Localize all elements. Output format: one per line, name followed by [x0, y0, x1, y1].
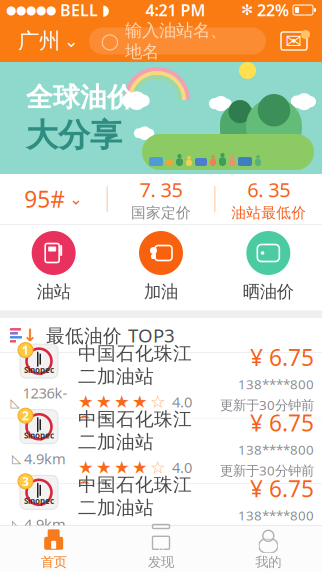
staticText: 4.0 — [168, 458, 192, 477]
staticText: 国家定价 — [131, 204, 191, 222]
button[interactable]: 晒油价 — [215, 231, 322, 302]
staticText: 我的 — [255, 554, 281, 570]
staticText: ¥ 6.75 — [250, 473, 314, 503]
staticText: ☆ — [150, 392, 166, 412]
staticText: ★ — [132, 458, 148, 477]
staticText: ↓ — [23, 325, 38, 345]
staticText: 138****800 — [238, 441, 314, 458]
staticText: ✻ — [241, 2, 253, 18]
staticText: ◯ — [101, 32, 119, 50]
button[interactable]: 广州 — [8, 21, 81, 61]
staticText: 中国石化珠江二加油站 — [78, 473, 192, 519]
staticText: ⌄ — [64, 31, 79, 51]
staticText: ★ — [78, 458, 94, 477]
staticText: 加油 — [144, 281, 178, 302]
staticText: 95# — [24, 184, 65, 214]
staticText: BELL — [56, 0, 102, 21]
staticText: 全球油价 — [26, 81, 134, 114]
staticText: 4.0 — [168, 392, 192, 412]
staticText: 油站最低价 — [231, 204, 306, 222]
staticText: 6. 35 — [247, 176, 290, 203]
staticText: ★ — [132, 523, 148, 543]
button[interactable]: 油站 — [0, 231, 107, 302]
staticText: ¥ 6.75 — [250, 408, 314, 438]
staticText: 广州 — [18, 28, 60, 54]
staticText: ★ — [132, 392, 148, 412]
staticText: 更新于30分钟前 — [220, 461, 314, 479]
button[interactable]: Sinopec — [0, 484, 322, 549]
staticText: ☆ — [150, 523, 166, 543]
staticText: ⌄ — [69, 190, 82, 208]
button[interactable]: ▽ — [107, 526, 215, 572]
staticText: ★ — [96, 458, 112, 477]
staticText: ☆ — [150, 458, 166, 477]
staticText: 2 — [22, 408, 29, 424]
staticText: ★ — [96, 392, 112, 412]
staticText: 138****800 — [238, 506, 314, 524]
staticText: 4:21 PM — [145, 0, 205, 21]
staticText: 发现 — [148, 554, 174, 570]
button[interactable]: Sinopec — [0, 418, 322, 483]
staticText: 大分享 — [26, 116, 122, 155]
staticText: 3 — [22, 473, 29, 489]
staticText: 1 — [22, 342, 29, 358]
staticText: ★ — [96, 523, 112, 543]
staticText: 138****800 — [238, 375, 314, 393]
staticText: 7. 35 — [139, 176, 182, 203]
staticText: ★ — [114, 458, 130, 477]
staticText: 油站 — [37, 281, 71, 302]
staticText: 输入油站名、地名 — [125, 20, 227, 62]
staticText: ★ — [114, 392, 130, 412]
button[interactable]: 首页 — [0, 526, 107, 572]
staticText: Sinopec — [24, 364, 54, 375]
staticText: 首页 — [41, 554, 67, 570]
staticText: ◗ — [102, 2, 110, 18]
staticText: 中国石化珠江二加油站 — [78, 342, 192, 388]
staticText: 最低油价 TOP3 — [46, 323, 175, 348]
staticText: ¥ 6.75 — [250, 342, 314, 372]
button[interactable]: 加油 — [107, 231, 215, 302]
button[interactable]: 我的 — [215, 526, 322, 572]
staticText: Sinopec — [24, 496, 54, 506]
staticText: ★ — [78, 523, 94, 543]
staticText: ◺ — [10, 396, 19, 409]
button[interactable]: 95# — [0, 174, 107, 224]
staticText: ★ — [114, 523, 130, 543]
staticText: 中国石化珠江二加油站 — [78, 408, 192, 454]
staticText: 更新于30分钟前 — [220, 396, 314, 414]
staticText: ◺ — [12, 452, 21, 465]
staticText: 晒油价 — [243, 281, 294, 302]
staticText: ◺ — [12, 517, 21, 531]
staticText: Sinopec — [24, 430, 54, 441]
button[interactable]: ◯ — [89, 27, 266, 54]
staticText: 4.9km — [24, 514, 66, 534]
staticText: ●●●●● — [6, 3, 56, 17]
staticText: ✉ — [285, 30, 302, 52]
staticText: 1236km — [22, 383, 67, 422]
button[interactable]: Sinopec — [0, 353, 322, 418]
staticText: 4.9km — [24, 449, 66, 468]
staticText: 更新于30分钟前 — [220, 527, 314, 545]
staticText: 22% — [253, 0, 293, 21]
staticText: 4.0 — [168, 523, 192, 543]
staticText: ★ — [78, 392, 94, 412]
button[interactable]: 消息 — [274, 21, 314, 61]
staticText: ▽ — [155, 538, 166, 555]
